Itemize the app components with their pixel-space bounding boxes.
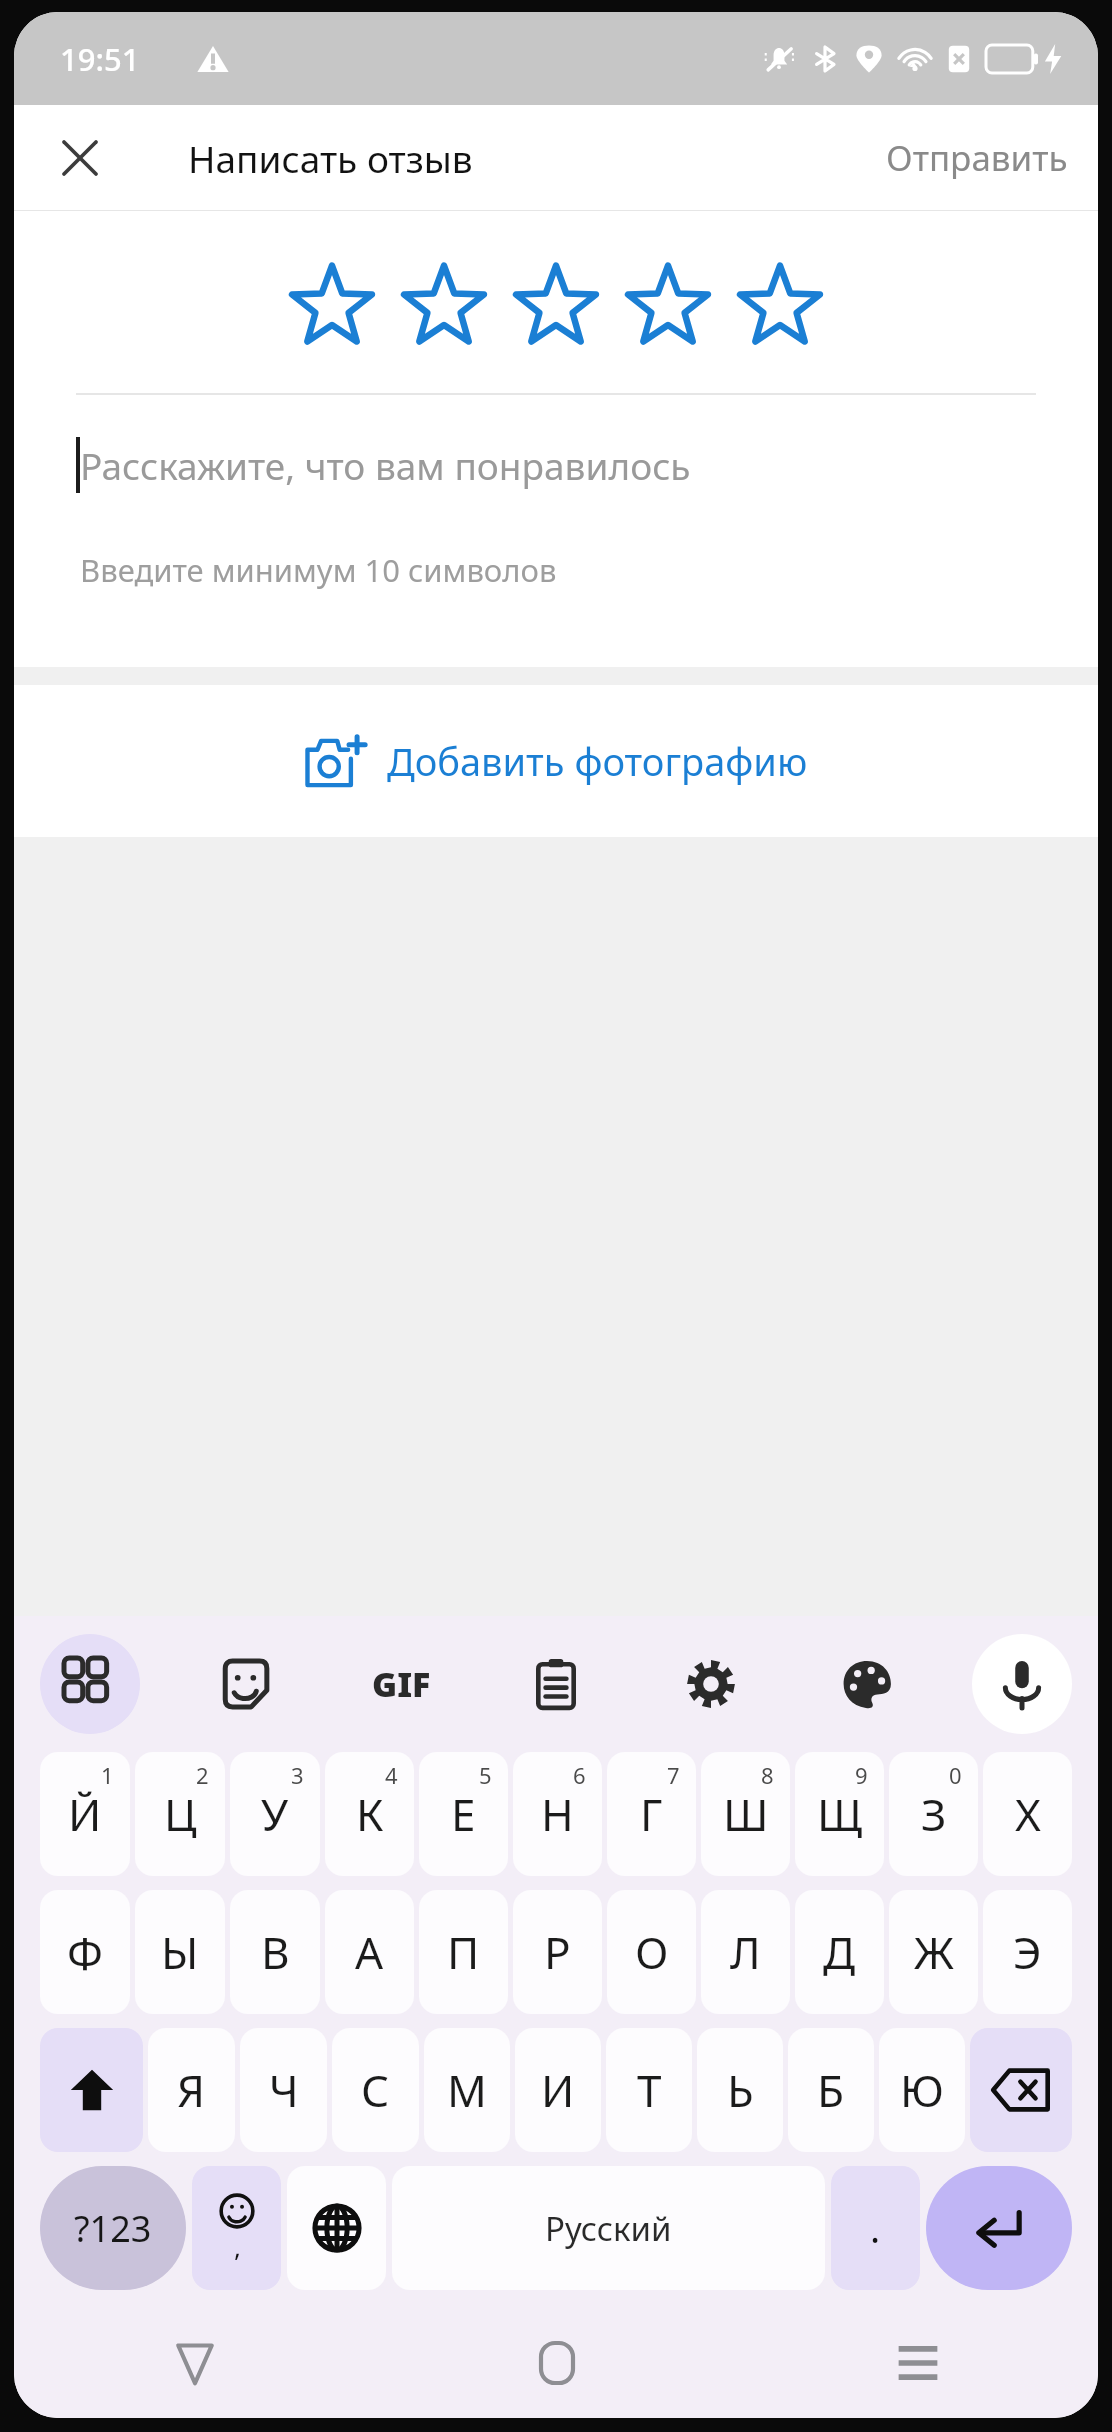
staticText: 19:51 xyxy=(60,38,140,80)
button[interactable]: Отправить xyxy=(856,112,1098,204)
button[interactable]: О xyxy=(607,1890,696,2014)
button[interactable]: Б xyxy=(788,2028,874,2152)
button[interactable]: Оценка 1 xyxy=(276,249,388,361)
staticText: П xyxy=(447,1922,480,1982)
button[interactable]: . xyxy=(831,2166,920,2290)
button[interactable]: Ц xyxy=(135,1752,225,1876)
button[interactable]: Ш xyxy=(701,1752,790,1876)
staticText: Й xyxy=(68,1784,102,1844)
button[interactable]: Ы xyxy=(135,1890,225,2014)
button[interactable]: Буфер обмена xyxy=(506,1634,606,1734)
staticText: Т xyxy=(637,2060,662,2120)
button[interactable]: Ю xyxy=(879,2028,965,2152)
staticText: GIF xyxy=(372,1661,431,1707)
button[interactable]: Голосовой ввод xyxy=(972,1634,1072,1734)
staticText: Х xyxy=(1015,1784,1041,1844)
staticText: В xyxy=(261,1922,290,1982)
button[interactable]: Настройки xyxy=(661,1634,761,1734)
button[interactable]: ?123 xyxy=(40,2166,186,2290)
button[interactable]: Приложения xyxy=(40,1634,140,1734)
button[interactable]: Т xyxy=(606,2028,692,2152)
button[interactable]: Темы xyxy=(817,1634,917,1734)
button[interactable]: Shift xyxy=(40,2028,143,2152)
button[interactable]: Щ xyxy=(795,1752,884,1876)
button[interactable]: Недавние приложения xyxy=(737,2308,1098,2418)
button[interactable]: А xyxy=(325,1890,414,2014)
staticText: 4 xyxy=(385,1760,398,1790)
staticText: Р xyxy=(544,1922,571,1982)
button[interactable]: М xyxy=(424,2028,510,2152)
staticText: Ы xyxy=(161,1922,199,1982)
staticText: Ю xyxy=(900,2060,944,2120)
button[interactable]: Оценка 5 xyxy=(724,249,836,361)
button[interactable]: Русский xyxy=(392,2166,825,2290)
staticText: Расскажите, что вам понравилось xyxy=(80,440,691,490)
staticText: Э xyxy=(1013,1922,1042,1982)
button[interactable]: Удалить xyxy=(970,2028,1072,2152)
button[interactable]: Н xyxy=(513,1752,602,1876)
button[interactable]: Сменить язык xyxy=(287,2166,386,2290)
staticText: . xyxy=(870,2202,881,2254)
staticText: С xyxy=(361,2060,390,2120)
button[interactable]: К xyxy=(325,1752,414,1876)
button[interactable]: Эмодзи xyxy=(192,2166,281,2290)
button[interactable]: Закрыть xyxy=(44,122,116,194)
button[interactable]: Ф xyxy=(40,1890,130,2014)
button[interactable]: П xyxy=(419,1890,508,2014)
button[interactable]: С xyxy=(332,2028,419,2152)
staticText: М xyxy=(447,2060,487,2120)
staticText: Русский xyxy=(545,2206,672,2251)
button[interactable]: И xyxy=(515,2028,601,2152)
button[interactable]: Ч xyxy=(240,2028,327,2152)
button[interactable]: Х xyxy=(983,1752,1072,1876)
staticText: Г xyxy=(640,1784,663,1844)
button[interactable]: Э xyxy=(983,1890,1072,2014)
button[interactable]: Ввод xyxy=(926,2166,1072,2290)
button[interactable]: Й xyxy=(40,1752,130,1876)
button[interactable]: Л xyxy=(701,1890,790,2014)
staticText: Н xyxy=(541,1784,574,1844)
staticText: Ф xyxy=(67,1922,103,1982)
staticText: А xyxy=(355,1922,384,1982)
button[interactable]: Оценка 4 xyxy=(612,249,724,361)
staticText: 8 xyxy=(761,1760,774,1790)
staticText: Д xyxy=(823,1922,856,1982)
staticText: 2 xyxy=(196,1760,209,1790)
button[interactable]: Я xyxy=(148,2028,235,2152)
staticText: 7 xyxy=(667,1760,680,1790)
staticText: Б xyxy=(817,2060,845,2120)
staticText: И xyxy=(541,2060,575,2120)
staticText: З xyxy=(921,1784,947,1844)
button[interactable]: В xyxy=(230,1890,320,2014)
button[interactable]: Оценка 2 xyxy=(388,249,500,361)
staticText: 6 xyxy=(573,1760,586,1790)
staticText: 0 xyxy=(949,1760,962,1790)
staticText: Я xyxy=(177,2060,206,2120)
staticText: Е xyxy=(451,1784,476,1844)
button[interactable]: Расскажите, что вам понравилось xyxy=(76,437,1098,493)
button[interactable]: Р xyxy=(513,1890,602,2014)
staticText: Ь xyxy=(727,2060,754,2120)
button[interactable]: З xyxy=(889,1752,978,1876)
button[interactable]: Добавить фотографию xyxy=(14,685,1098,837)
button[interactable]: Г xyxy=(607,1752,696,1876)
button[interactable]: Стикеры xyxy=(195,1634,295,1734)
staticText: Л xyxy=(730,1922,761,1982)
button[interactable]: Оценка 3 xyxy=(500,249,612,361)
button[interactable]: Е xyxy=(419,1752,508,1876)
staticText: О xyxy=(635,1922,669,1982)
button[interactable]: Д xyxy=(795,1890,884,2014)
staticText: У xyxy=(261,1784,289,1844)
staticText: Написать отзыв xyxy=(188,133,473,183)
button[interactable]: Ь xyxy=(697,2028,783,2152)
button[interactable]: Ж xyxy=(889,1890,978,2014)
staticText: Ж xyxy=(914,1922,954,1982)
staticText: Отправить xyxy=(886,134,1068,182)
button[interactable]: Главный экран xyxy=(376,2308,737,2418)
staticText: 9 xyxy=(855,1760,868,1790)
button[interactable]: У xyxy=(230,1752,320,1876)
staticText: Введите минимум 10 символов xyxy=(80,549,557,591)
button[interactable]: Назад xyxy=(14,2308,376,2418)
staticText: Ч xyxy=(269,2060,299,2120)
button[interactable]: GIF xyxy=(351,1634,451,1734)
